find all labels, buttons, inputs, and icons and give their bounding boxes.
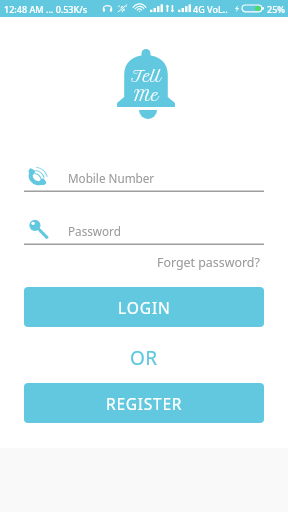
staticText: … 0.53K/s — [46, 3, 88, 15]
button[interactable]: Forget password? — [148, 253, 260, 271]
staticText: OR — [130, 345, 158, 369]
button[interactable]: LOGIN — [24, 287, 264, 327]
staticText: REGISTER — [106, 393, 183, 414]
staticText: Forget password? — [157, 254, 260, 271]
staticText: Password — [68, 223, 121, 239]
staticText: LOGIN — [118, 297, 171, 318]
staticText: 25% — [267, 3, 285, 15]
button[interactable]: REGISTER — [24, 383, 264, 423]
staticText: 12:48 AM — [4, 3, 44, 15]
staticText: Tell Me — [131, 67, 162, 105]
staticText: 4G VoL.. — [193, 3, 228, 15]
staticText: Mobile Number — [68, 170, 155, 186]
